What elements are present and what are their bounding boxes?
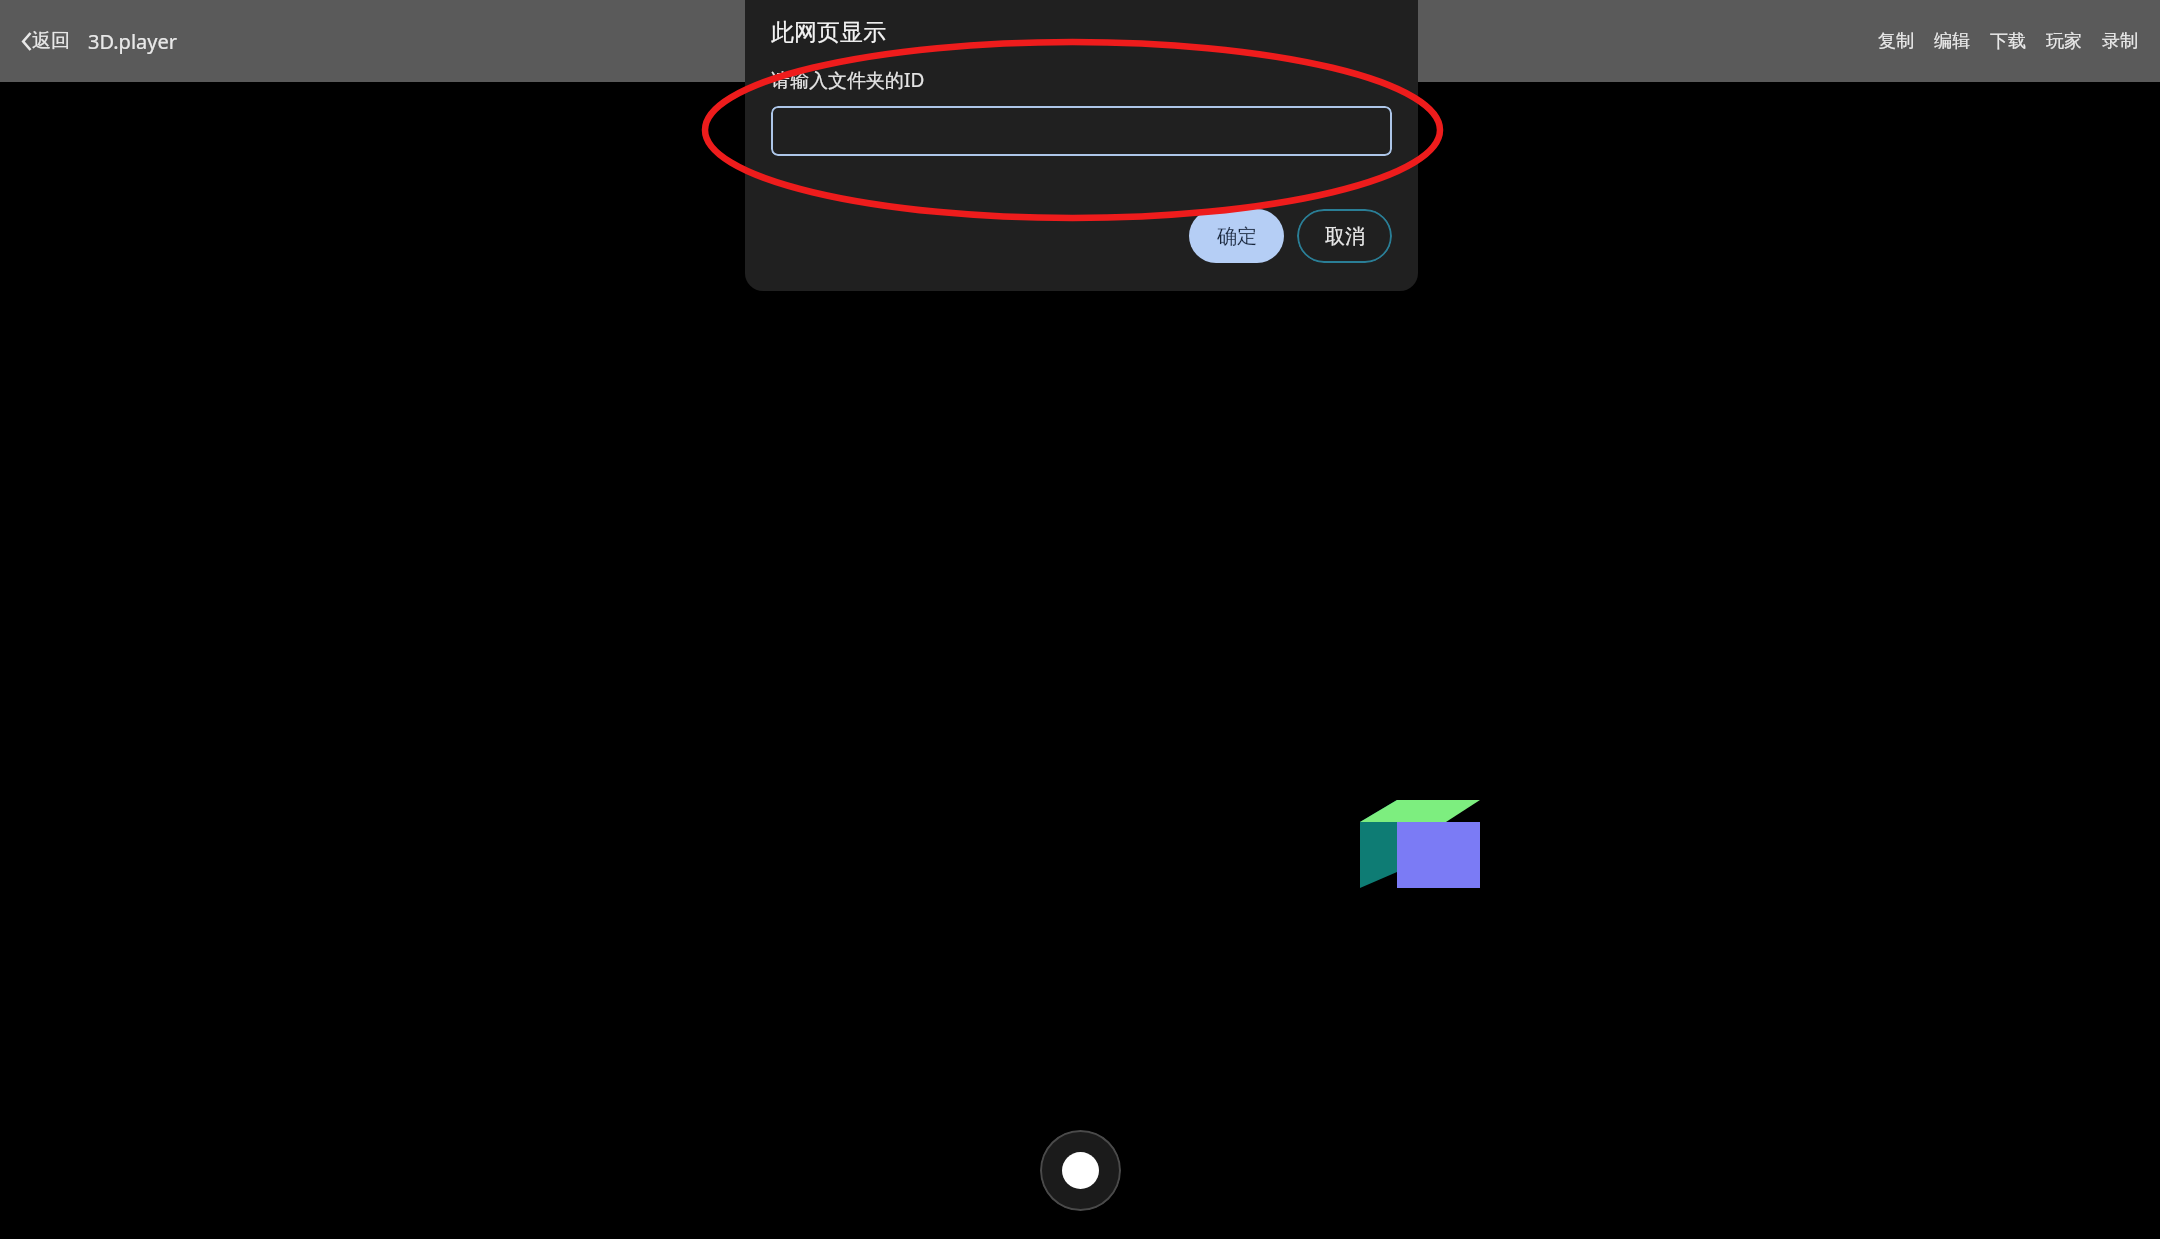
button[interactable]: 取消 [1297,209,1392,263]
button[interactable]: 编辑 [1924,20,1980,63]
button[interactable]: 玩家 [2036,20,2092,63]
staticText: 此网页显示 [771,18,886,47]
staticText: 玩家 [2046,30,2082,53]
staticText: 编辑 [1934,30,1970,53]
staticText: 确定 [1217,224,1257,249]
staticText: 下载 [1990,30,2026,53]
staticText: 录制 [2102,30,2138,53]
button[interactable]: 复制 [1868,20,1924,63]
staticText: 取消 [1325,224,1365,249]
staticText: 请输入文件夹的ID [771,67,925,93]
staticText: 3D.player [88,28,178,55]
button[interactable]: 确定 [1189,209,1284,263]
button[interactable]: 下载 [1980,20,2036,63]
button[interactable]: 返回 [18,21,74,61]
button[interactable]: 录制 [2092,20,2148,63]
button[interactable]: Joystick [1040,1130,1121,1211]
button[interactable] [771,106,1392,156]
staticText: 返回 [32,29,70,53]
staticText: 复制 [1878,30,1914,53]
